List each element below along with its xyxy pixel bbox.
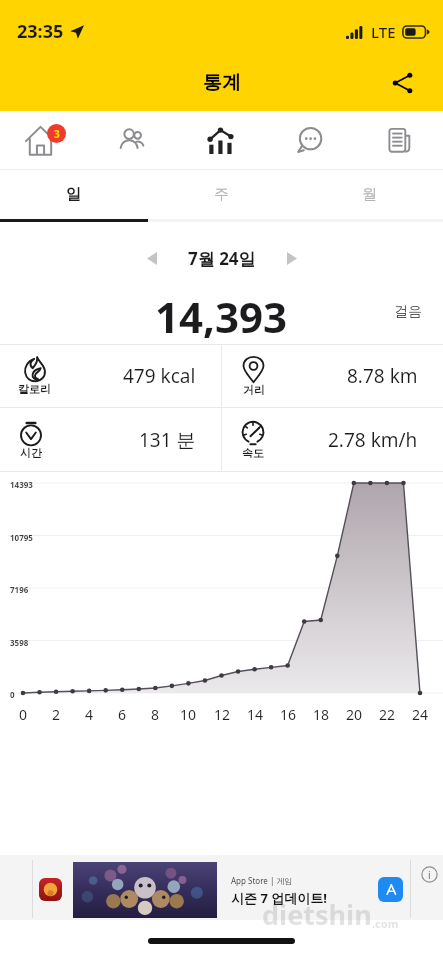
staticText: 일 <box>66 185 81 204</box>
staticText: 24 <box>412 705 429 724</box>
staticText: 시즌 7 업데이트! <box>231 889 327 907</box>
button[interactable]: Friends <box>88 111 176 169</box>
button[interactable]: 일 <box>0 170 147 219</box>
staticText: 131 분 <box>139 427 196 453</box>
button[interactable]: 시간 <box>0 408 221 471</box>
button[interactable]: 거리 <box>222 345 443 407</box>
staticText: 479 kcal <box>123 363 196 389</box>
staticText: 2 <box>52 705 61 724</box>
staticText: 속도 <box>242 446 264 460</box>
button[interactable]: Previous day <box>132 238 172 278</box>
staticText: 0 <box>19 705 28 724</box>
staticText: 주 <box>214 185 229 204</box>
staticText: 3 <box>54 127 60 141</box>
button[interactable]: 칼로리 <box>0 345 221 407</box>
button[interactable]: Next day <box>272 238 312 278</box>
staticText: 22 <box>379 705 396 724</box>
staticText: 18 <box>313 705 330 724</box>
staticText: 8.78 km <box>347 363 418 389</box>
staticText: i <box>428 868 431 882</box>
button[interactable]: Home <box>0 111 88 169</box>
staticText: 7월 24일 <box>188 247 256 270</box>
button[interactable]: Chat <box>265 111 354 169</box>
staticText: 14393 <box>10 479 33 490</box>
staticText: dietshin <box>262 896 372 933</box>
staticText: 7196 <box>10 584 29 595</box>
staticText: 8 <box>151 705 160 724</box>
staticText: 칼로리 <box>18 382 51 396</box>
staticText: 거리 <box>243 383 265 397</box>
staticText: .com <box>372 916 399 931</box>
staticText: 2.78 km/h <box>328 427 418 453</box>
staticText: 0 <box>10 689 15 700</box>
button[interactable]: 월 <box>295 170 443 219</box>
staticText: 10795 <box>10 532 33 543</box>
staticText: 4 <box>85 705 94 724</box>
staticText: 월 <box>362 185 377 204</box>
staticText: App Store | 게임 <box>231 875 293 886</box>
staticText: 3598 <box>10 637 29 648</box>
button[interactable]: Ad information <box>421 866 438 883</box>
staticText: 14,393 <box>155 288 288 338</box>
staticText: 걸음 <box>394 303 422 321</box>
staticText: 14 <box>247 705 264 724</box>
staticText: 시간 <box>20 446 42 460</box>
button[interactable]: Board <box>354 111 443 169</box>
staticText: 10 <box>180 705 197 724</box>
staticText: 통계 <box>203 71 241 95</box>
staticText: 16 <box>280 705 297 724</box>
staticText: 23:35 <box>17 19 64 44</box>
staticText: 6 <box>118 705 127 724</box>
button[interactable]: 주 <box>147 170 295 219</box>
button[interactable]: Statistics <box>176 111 265 169</box>
staticText: 12 <box>214 705 231 724</box>
button[interactable]: 속도 <box>222 408 443 471</box>
staticText: LTE <box>371 22 396 42</box>
button[interactable]: Share <box>379 59 427 107</box>
staticText: 20 <box>346 705 363 724</box>
button[interactable]: App Store | 게임 <box>0 855 443 920</box>
